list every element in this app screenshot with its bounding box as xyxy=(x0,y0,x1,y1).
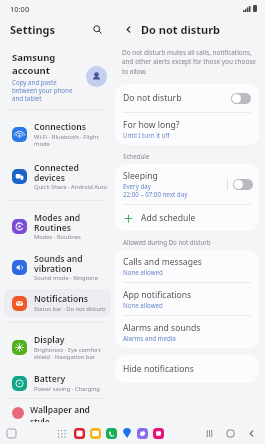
staticText: and tablet xyxy=(12,94,42,102)
staticText: Add schedule xyxy=(141,212,196,224)
staticText: Copy and paste xyxy=(12,78,57,86)
button[interactable]: App xyxy=(106,428,117,439)
button[interactable]: Connections xyxy=(0,117,115,152)
staticText: Display xyxy=(34,334,65,346)
staticText: Do not disturb mutes all calls, notifica… xyxy=(122,48,256,76)
button[interactable]: Alarms and sounds xyxy=(115,316,259,348)
staticText: Schedule xyxy=(123,152,150,160)
button[interactable]: All apps xyxy=(55,427,67,439)
staticText: App notifications xyxy=(123,289,192,301)
staticText: Status bar · Do not disturb xyxy=(34,305,106,313)
button[interactable]: Add schedule xyxy=(115,205,259,231)
staticText: account xyxy=(12,64,50,77)
button[interactable]: Notifications xyxy=(4,289,111,317)
staticText: Hide notifications xyxy=(123,363,194,375)
staticText: Sound mode · Ringtone xyxy=(34,274,98,282)
staticText: Brightness · Eye comfort shield · Naviga… xyxy=(34,346,101,361)
staticText: Do not disturb xyxy=(123,92,231,104)
button[interactable]: For how long? xyxy=(115,113,259,145)
button[interactable]: Toggle xyxy=(231,93,251,104)
button[interactable]: Display xyxy=(0,330,115,365)
staticText: between your phone xyxy=(12,86,73,94)
staticText: Sleeping xyxy=(123,170,158,182)
button[interactable]: App xyxy=(90,428,101,439)
staticText: Allowed during Do not disturb xyxy=(123,238,211,246)
button[interactable]: Battery xyxy=(0,369,115,397)
staticText: Connected devices xyxy=(34,162,111,183)
button[interactable]: App notifications xyxy=(115,283,259,315)
staticText: Power saving · Charging xyxy=(34,385,100,393)
staticText: 10:00 xyxy=(10,4,30,14)
button[interactable]: App xyxy=(137,428,148,439)
staticText: Connections xyxy=(34,121,87,133)
staticText: Calls and messages xyxy=(123,256,202,268)
button[interactable]: Modes and Routines xyxy=(0,208,115,245)
button[interactable]: Calls and messages xyxy=(115,250,259,282)
staticText: Wi-Fi · Bluetooth · Flight mode xyxy=(34,133,99,148)
staticText: Notifications xyxy=(34,293,88,305)
button[interactable]: Back xyxy=(245,427,257,439)
button[interactable]: Hide notifications xyxy=(115,355,259,383)
button[interactable]: Toggle xyxy=(233,179,253,190)
button[interactable]: App xyxy=(74,428,85,439)
staticText: 22:00 – 07:00 next day xyxy=(123,190,188,198)
button[interactable]: Samsung xyxy=(0,49,115,108)
staticText: Samsung xyxy=(12,51,56,64)
button[interactable]: Search settings xyxy=(89,21,105,37)
button[interactable]: Back xyxy=(121,22,136,37)
button[interactable]: App xyxy=(153,428,164,439)
button[interactable]: Wallpaper and style xyxy=(0,404,115,422)
staticText: None allowed xyxy=(123,268,163,276)
staticText: Battery xyxy=(34,373,66,385)
button[interactable]: Messenger xyxy=(122,428,132,438)
staticText: Wallpaper and style xyxy=(30,404,103,422)
staticText: Alarms and media xyxy=(123,334,176,342)
button[interactable]: Do not disturb xyxy=(115,84,259,112)
staticText: Settings xyxy=(10,22,56,37)
staticText: Sounds and vibration xyxy=(34,253,83,274)
staticText: Modes · Routines xyxy=(34,233,81,241)
staticText: None allowed xyxy=(123,301,163,309)
button[interactable]: Recent app xyxy=(6,428,17,439)
staticText: Do not disturb xyxy=(141,22,221,37)
button[interactable]: Recents xyxy=(203,427,215,439)
button[interactable]: Sleeping xyxy=(115,164,259,204)
staticText: For how long? xyxy=(123,119,180,131)
button[interactable]: Home xyxy=(224,427,236,439)
staticText: Every day xyxy=(123,182,151,190)
staticText: Quick Share · Android Auto xyxy=(34,183,108,191)
staticText: Until I turn it off xyxy=(123,131,170,139)
button[interactable]: Sounds and vibration xyxy=(0,249,115,286)
staticText: Alarms and sounds xyxy=(123,322,201,334)
button[interactable]: Connected devices xyxy=(0,158,115,195)
staticText: Modes and Routines xyxy=(34,212,111,233)
